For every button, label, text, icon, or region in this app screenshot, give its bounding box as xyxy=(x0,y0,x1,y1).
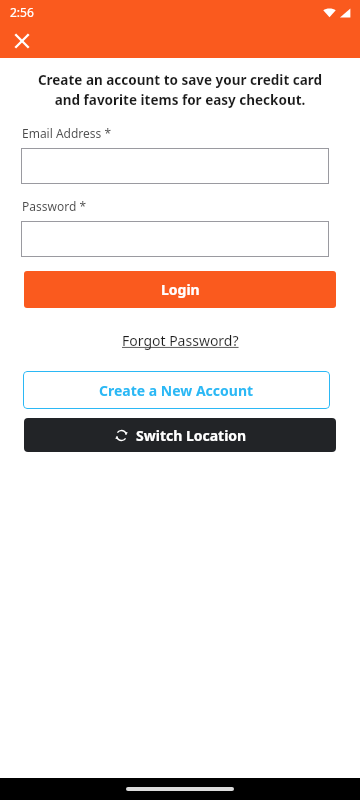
button[interactable] xyxy=(21,221,329,257)
button[interactable]: Close xyxy=(7,26,37,56)
staticText: Create a New Account xyxy=(99,381,254,400)
button[interactable]: Login xyxy=(24,271,336,308)
staticText: Create an account to save your credit ca… xyxy=(16,71,344,109)
staticText: Email Address * xyxy=(22,125,112,141)
staticText: Switch Location xyxy=(136,426,247,445)
staticText: Login xyxy=(161,280,200,299)
staticText: 2:56 xyxy=(10,4,34,20)
button[interactable]: Switch Location xyxy=(24,418,336,452)
button[interactable] xyxy=(21,148,329,184)
staticText: Forgot Password? xyxy=(122,331,239,350)
button[interactable]: Create a New Account xyxy=(23,371,330,409)
button[interactable]: Forgot Password? xyxy=(116,328,245,353)
staticText: Password * xyxy=(22,198,87,214)
